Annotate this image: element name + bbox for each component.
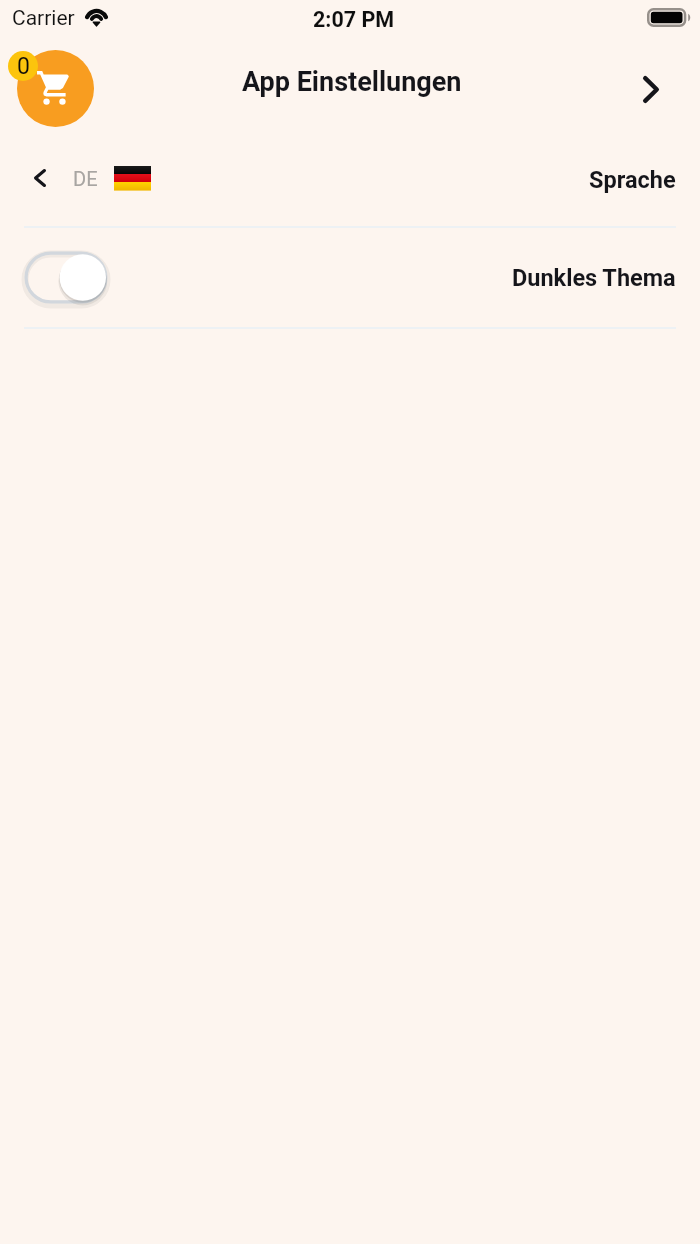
button[interactable]: Weiter (623, 61, 679, 117)
staticText: Carrier (12, 6, 75, 31)
staticText: Dunkles Thema (512, 264, 676, 292)
staticText: DE (73, 167, 98, 190)
staticText: App Einstellungen (242, 66, 462, 98)
staticText: Sprache (589, 166, 676, 194)
button[interactable]: Dunkles Thema umschalten (24, 251, 108, 304)
button[interactable]: Sprache wechseln (0, 140, 700, 226)
button[interactable]: Sprache wechseln (24, 166, 151, 190)
staticText: 2:07 PM (313, 7, 395, 32)
staticText: 0 (17, 53, 30, 80)
button[interactable]: Dunkles Thema umschalten (0, 228, 700, 327)
button[interactable]: Warenkorb (17, 50, 94, 127)
